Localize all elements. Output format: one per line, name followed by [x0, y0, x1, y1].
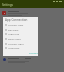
staticText: Connect High [8, 23, 24, 26]
button[interactable]: Logic Info [3, 31, 38, 36]
button[interactable]: Flex Data [3, 27, 38, 32]
button[interactable]: CANCEL [28, 50, 39, 55]
button[interactable]: Connect High [3, 22, 38, 27]
staticText: Settings [2, 3, 13, 7]
button[interactable]: Connect Light [3, 41, 38, 46]
staticText: CANCEL [29, 51, 38, 54]
button[interactable]: Finish Light [3, 36, 38, 41]
staticText: Logic Info [8, 32, 20, 35]
button[interactable]: Automatic [3, 45, 38, 50]
staticText: App Connection [5, 18, 28, 22]
staticText: Connect Light [8, 42, 24, 45]
staticText: Automatic [8, 46, 20, 49]
staticText: Finish Light [8, 37, 21, 40]
staticText: Flex Data [8, 28, 19, 31]
